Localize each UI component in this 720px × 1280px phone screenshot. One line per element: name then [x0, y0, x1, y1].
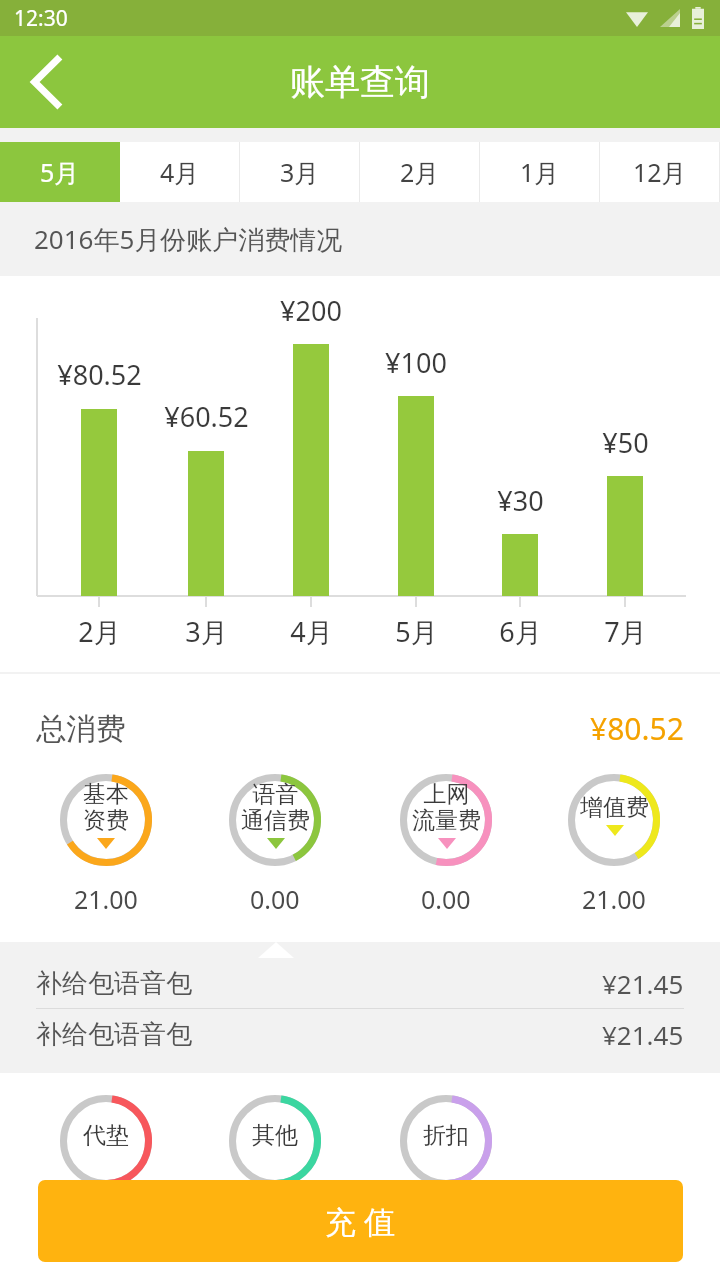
- button[interactable]: 上网 流量费: [386, 766, 506, 916]
- staticText: 5月: [40, 155, 80, 189]
- button[interactable]: 折扣: [386, 1087, 506, 1195]
- staticText: 4月: [290, 613, 333, 650]
- staticText: 21.00: [74, 882, 138, 916]
- button[interactable]: 12月: [600, 142, 720, 202]
- staticText: 基本 资费: [83, 780, 129, 835]
- button[interactable]: 代垫: [46, 1087, 166, 1195]
- staticText: ¥80.52: [57, 356, 142, 393]
- staticText: 充 值: [325, 1200, 396, 1242]
- staticText: 补给包语音包: [36, 1018, 192, 1051]
- staticText: 2月: [78, 613, 121, 650]
- button[interactable]: 基本 资费: [46, 766, 166, 916]
- staticText: 12月: [633, 155, 687, 189]
- staticText: 4月: [160, 155, 200, 189]
- staticText: ¥60.52: [164, 398, 249, 435]
- staticText: 0.00: [250, 882, 300, 916]
- staticText: 6月: [499, 613, 542, 650]
- staticText: 2016年5月份账户消费情况: [34, 221, 343, 257]
- button[interactable]: Back: [0, 36, 92, 128]
- staticText: ¥50: [602, 424, 649, 461]
- staticText: 其他: [252, 1121, 298, 1150]
- button[interactable]: 增值费: [554, 766, 674, 916]
- staticText: ¥200: [280, 292, 342, 329]
- staticText: 21.00: [582, 882, 646, 916]
- staticText: ¥21.45: [602, 1017, 684, 1052]
- staticText: 2月: [400, 155, 440, 189]
- button[interactable]: 1月: [480, 142, 600, 202]
- staticText: ¥80.52: [590, 708, 684, 749]
- staticText: 账单查询: [290, 60, 430, 104]
- button[interactable]: 语音 通信费: [215, 766, 335, 916]
- staticText: 3月: [280, 155, 320, 189]
- button[interactable]: 充 值: [38, 1180, 683, 1262]
- staticText: ¥21.45: [602, 966, 684, 1001]
- staticText: ¥30: [497, 482, 544, 519]
- staticText: 1月: [520, 155, 560, 189]
- staticText: 语音 通信费: [241, 780, 310, 835]
- staticText: 12:30: [14, 4, 68, 33]
- button[interactable]: 补给包语音包: [0, 1009, 720, 1059]
- staticText: 总消费: [36, 710, 126, 748]
- button[interactable]: 2月: [360, 142, 480, 202]
- staticText: 折扣: [423, 1121, 469, 1150]
- staticText: 0.00: [421, 882, 471, 916]
- staticText: 5月: [395, 613, 438, 650]
- staticText: 上网 流量费: [412, 780, 481, 835]
- staticText: 7月: [604, 613, 647, 650]
- button[interactable]: 其他: [215, 1087, 335, 1195]
- staticText: 3月: [185, 613, 228, 650]
- staticText: 补给包语音包: [36, 967, 192, 1000]
- button[interactable]: 3月: [240, 142, 360, 202]
- button[interactable]: 补给包语音包: [0, 958, 720, 1008]
- button[interactable]: 5月: [0, 142, 120, 202]
- button[interactable]: 4月: [120, 142, 240, 202]
- staticText: ¥100: [385, 344, 447, 381]
- staticText: 增值费: [580, 793, 649, 822]
- staticText: 代垫: [83, 1121, 129, 1150]
